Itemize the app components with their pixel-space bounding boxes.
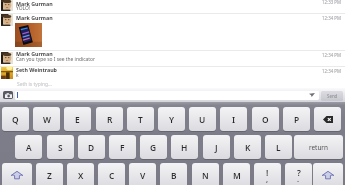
button[interactable]: Shift <box>2 163 32 185</box>
staticText: M <box>233 170 241 181</box>
staticText: Mark Gurman <box>16 0 53 7</box>
staticText: K <box>245 142 251 153</box>
staticText: , <box>266 174 269 184</box>
staticText: G <box>150 142 157 153</box>
staticText: Seth Weintraub <box>16 66 57 73</box>
staticText: A <box>26 142 32 153</box>
staticText: Mark Gurman <box>16 14 53 21</box>
staticText: J <box>215 142 218 153</box>
button[interactable]: G <box>140 135 167 159</box>
staticText: V <box>140 170 146 181</box>
button[interactable]: I <box>220 107 247 131</box>
staticText: P <box>294 114 300 125</box>
staticText: Mark Gurman <box>16 50 53 57</box>
button[interactable]: ! <box>254 163 281 185</box>
button[interactable] <box>15 91 319 100</box>
button[interactable]: K <box>234 135 261 159</box>
staticText: B <box>171 170 177 181</box>
button[interactable]: V <box>129 163 156 185</box>
staticText: C <box>109 170 115 181</box>
button[interactable]: J <box>203 135 230 159</box>
button[interactable]: S <box>47 135 74 159</box>
staticText: X <box>78 170 84 181</box>
staticText: return <box>309 143 328 152</box>
button[interactable]: A <box>15 135 42 159</box>
button[interactable]: D <box>78 135 105 159</box>
staticText: k <box>16 72 19 79</box>
staticText: S <box>58 142 63 153</box>
staticText: E <box>75 114 80 125</box>
button[interactable]: Y <box>158 107 185 131</box>
button[interactable]: return <box>294 135 343 159</box>
button[interactable]: R <box>96 107 123 131</box>
staticText: Z <box>47 170 52 181</box>
button[interactable]: Q <box>2 107 29 131</box>
button[interactable]: F <box>109 135 136 159</box>
staticText: Send <box>327 93 338 99</box>
button[interactable]: U <box>189 107 216 131</box>
staticText: Seth is typing... <box>17 81 52 88</box>
staticText: Q <box>12 114 19 125</box>
button[interactable]: N <box>192 163 219 185</box>
staticText: . <box>297 174 300 184</box>
button[interactable]: T <box>127 107 154 131</box>
button[interactable]: Shift <box>313 163 343 185</box>
staticText: ! <box>266 167 269 178</box>
staticText: O <box>262 114 269 125</box>
staticText: I <box>232 114 236 125</box>
button[interactable]: X <box>67 163 94 185</box>
button[interactable]: O <box>252 107 279 131</box>
staticText: T <box>138 114 143 125</box>
staticText: H <box>181 142 188 153</box>
button[interactable]: Z <box>36 163 63 185</box>
button[interactable]: E <box>64 107 91 131</box>
staticText: 12:33 PM <box>322 0 342 5</box>
button[interactable]: W <box>33 107 60 131</box>
staticText: ? <box>297 167 301 178</box>
staticText: 12:34 PM <box>322 68 342 74</box>
staticText: D <box>88 142 95 153</box>
button[interactable]: M <box>223 163 250 185</box>
button[interactable]: B <box>160 163 187 185</box>
button[interactable]: Backspace <box>314 107 341 131</box>
button[interactable]: Send <box>321 91 343 101</box>
staticText: 12:34 PM <box>322 15 342 21</box>
staticText: F <box>120 142 125 153</box>
staticText: Can you type so I see the indicator <box>16 56 96 63</box>
staticText: 12:34 PM <box>322 52 342 58</box>
staticText: R <box>107 114 113 125</box>
staticText: YOLO! <box>16 5 31 12</box>
staticText: N <box>202 170 209 181</box>
button[interactable]: ? <box>285 163 312 185</box>
button[interactable]: P <box>283 107 310 131</box>
button[interactable]: H <box>171 135 198 159</box>
button[interactable]: C <box>98 163 125 185</box>
staticText: W <box>43 114 51 125</box>
button[interactable]: Take photo <box>3 91 13 99</box>
staticText: L <box>276 142 281 153</box>
staticText: U <box>199 114 206 125</box>
staticText: Y <box>169 114 175 125</box>
button[interactable]: L <box>265 135 292 159</box>
